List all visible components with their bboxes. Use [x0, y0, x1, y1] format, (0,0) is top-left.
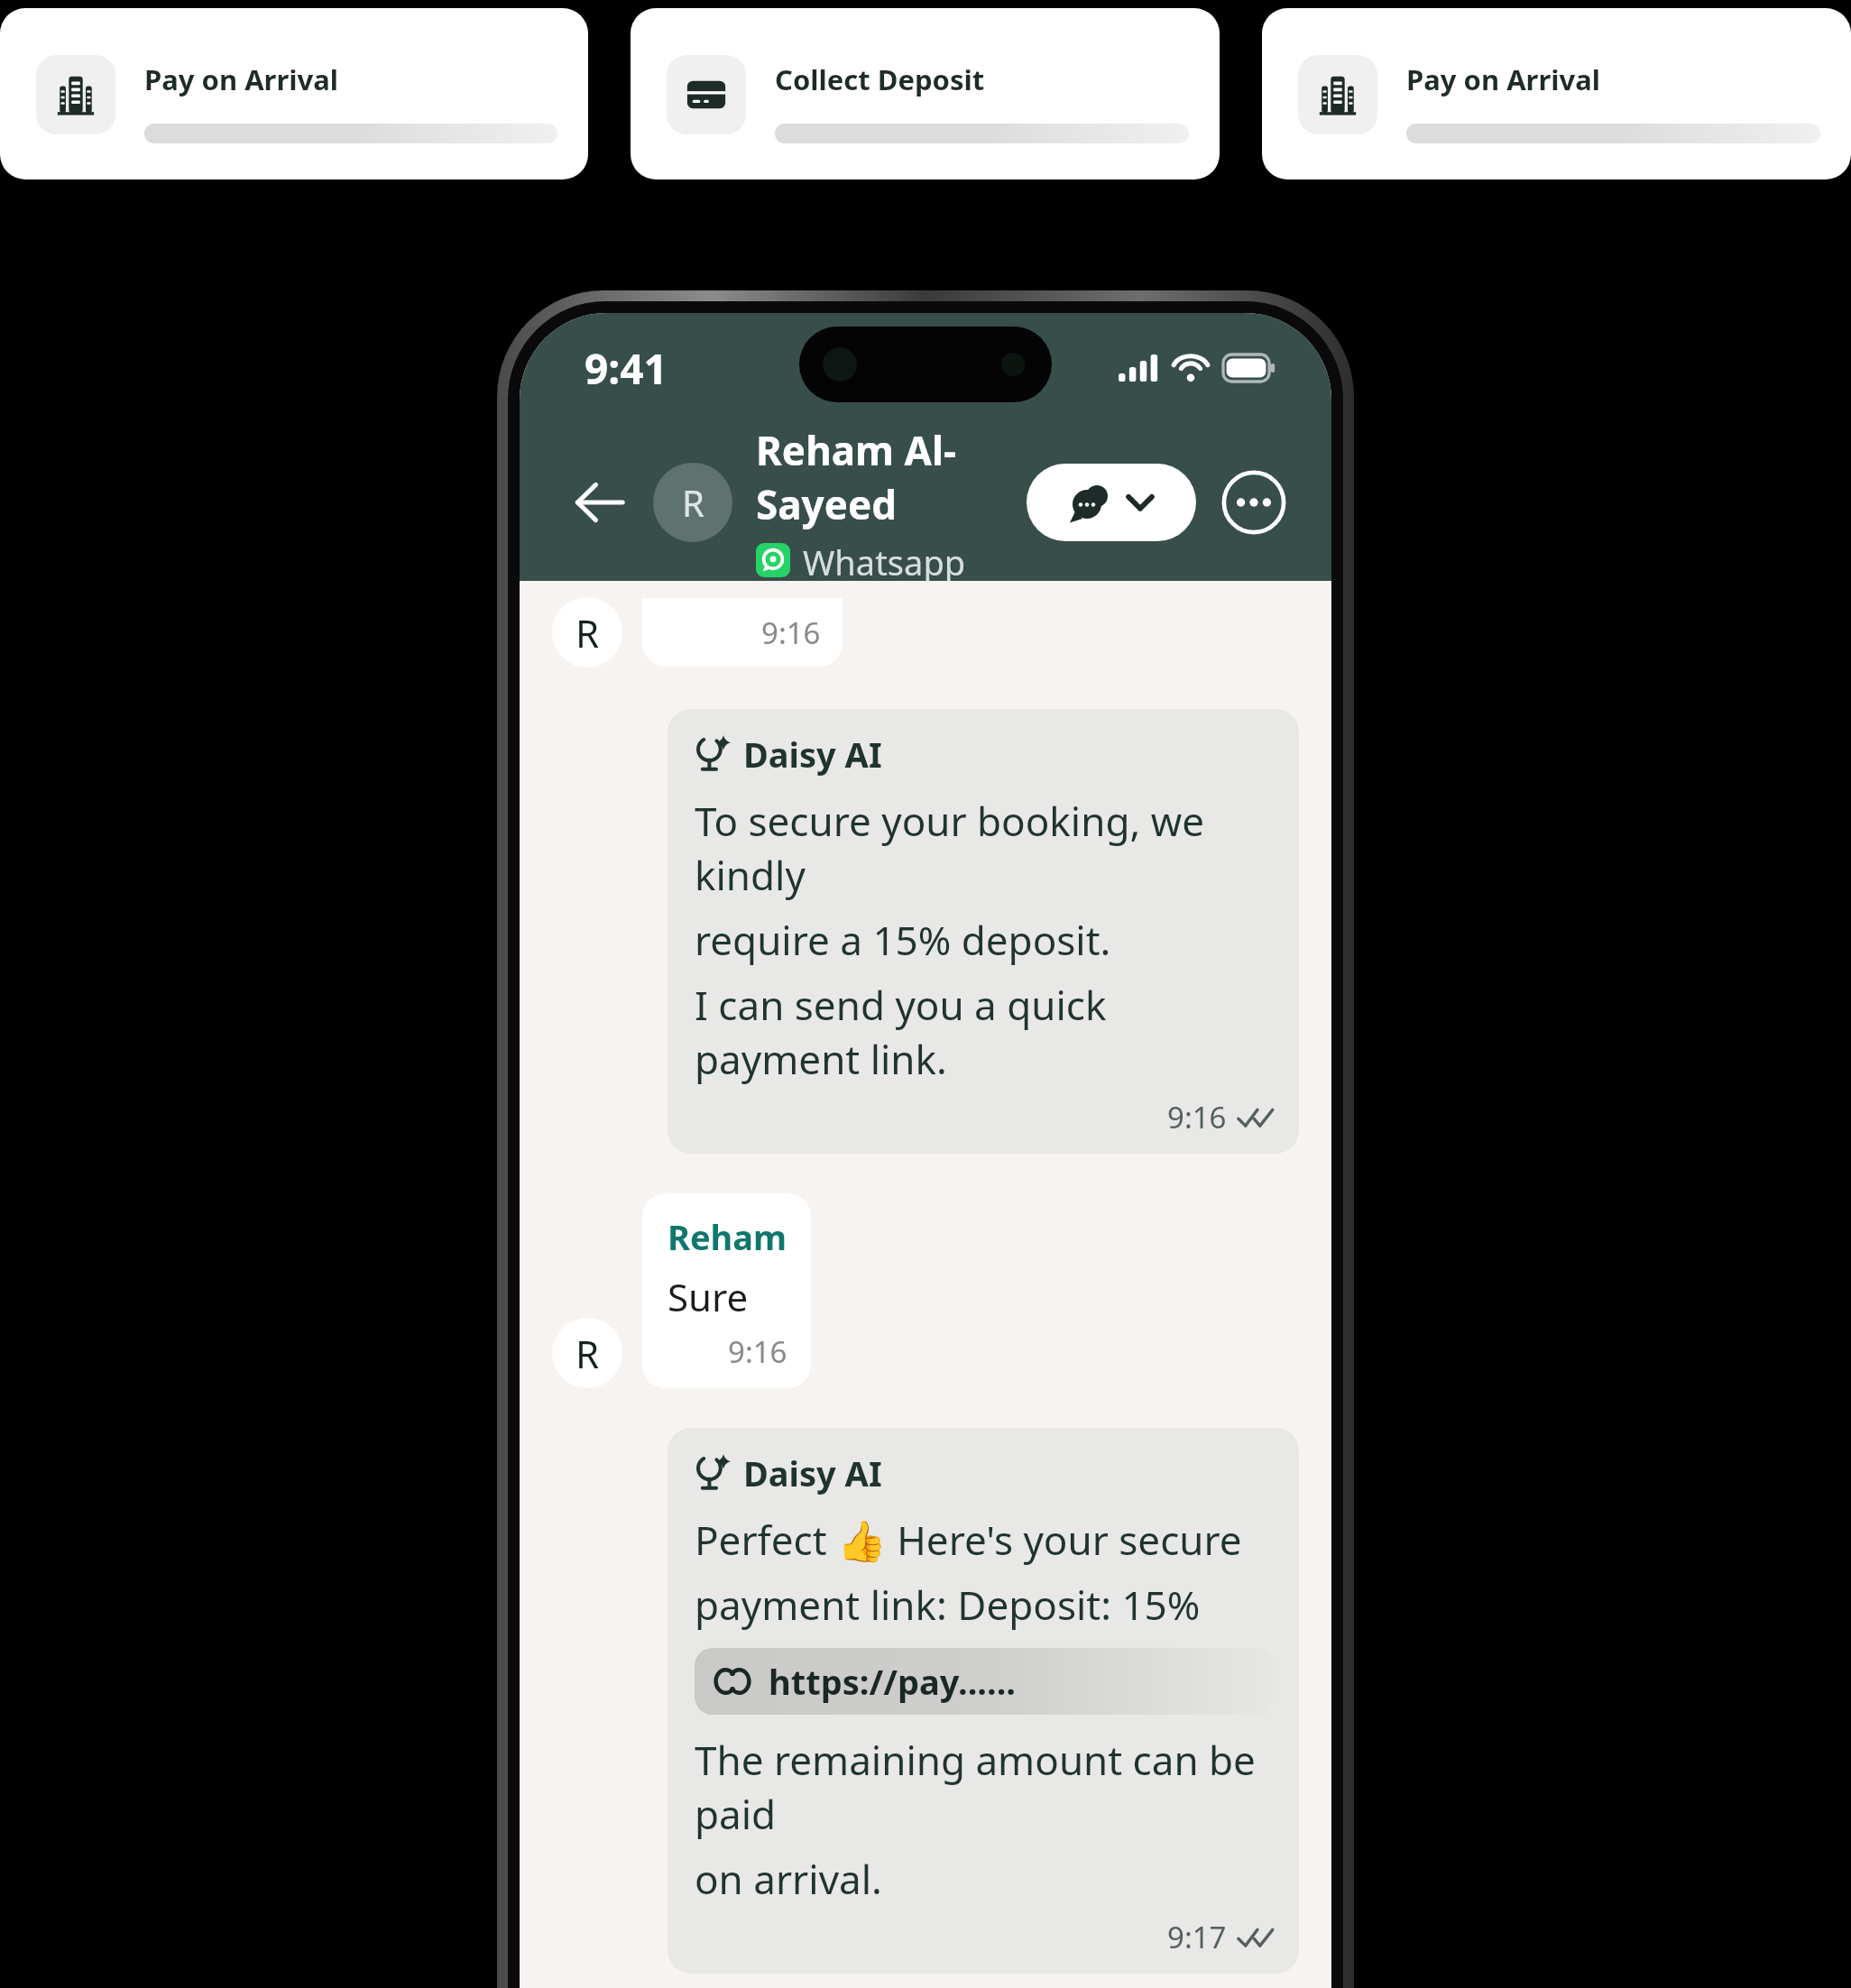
staticText: Daisy AI: [743, 731, 882, 778]
staticText: I can send you a quick payment link.: [695, 978, 1274, 1086]
staticText: require a 15% deposit.: [695, 913, 1111, 967]
button[interactable]: Daisy AI: [668, 709, 1299, 1154]
button[interactable]: More options: [1220, 468, 1288, 537]
button[interactable]: Channel selector: [1027, 464, 1196, 541]
staticText: 9:16: [1167, 1097, 1227, 1137]
staticText: 9:16: [761, 612, 821, 653]
staticText: Reham: [668, 1213, 787, 1260]
staticText: Daisy AI: [743, 1450, 882, 1496]
staticText: Perfect 👍 Here's your secure: [695, 1513, 1242, 1567]
staticText: Collect Deposit: [775, 60, 985, 98]
staticText: R: [576, 607, 600, 658]
staticText: payment link: Deposit: 15%: [695, 1578, 1201, 1632]
button[interactable]: Reham: [642, 1193, 811, 1388]
staticText: Sure: [668, 1271, 749, 1322]
staticText: Whatsapp: [803, 538, 966, 581]
button[interactable]: Pay on Arrival: [1262, 8, 1851, 179]
staticText: Reham Al-Sayeed: [756, 423, 1027, 531]
button[interactable]: Collect Deposit: [631, 8, 1220, 179]
staticText: Pay on Arrival: [144, 60, 339, 98]
staticText: To secure your booking, we kindly: [695, 794, 1274, 902]
staticText: https://pay......: [769, 1658, 1017, 1705]
staticText: R: [682, 478, 704, 527]
staticText: 9:41: [585, 340, 668, 397]
staticText: 9:16: [728, 1331, 787, 1372]
button[interactable]: Back: [566, 469, 633, 536]
staticText: The remaining amount can be paid: [695, 1733, 1274, 1841]
button[interactable]: Pay on Arrival: [0, 8, 588, 179]
staticText: on arrival.: [695, 1852, 882, 1906]
button[interactable]: 9:16: [642, 598, 843, 667]
button[interactable]: Daisy AI: [668, 1428, 1299, 1974]
staticText: Pay on Arrival: [1406, 60, 1601, 98]
button[interactable]: https://pay......: [695, 1648, 1274, 1715]
staticText: R: [576, 1328, 600, 1379]
staticText: 9:17: [1167, 1917, 1227, 1957]
